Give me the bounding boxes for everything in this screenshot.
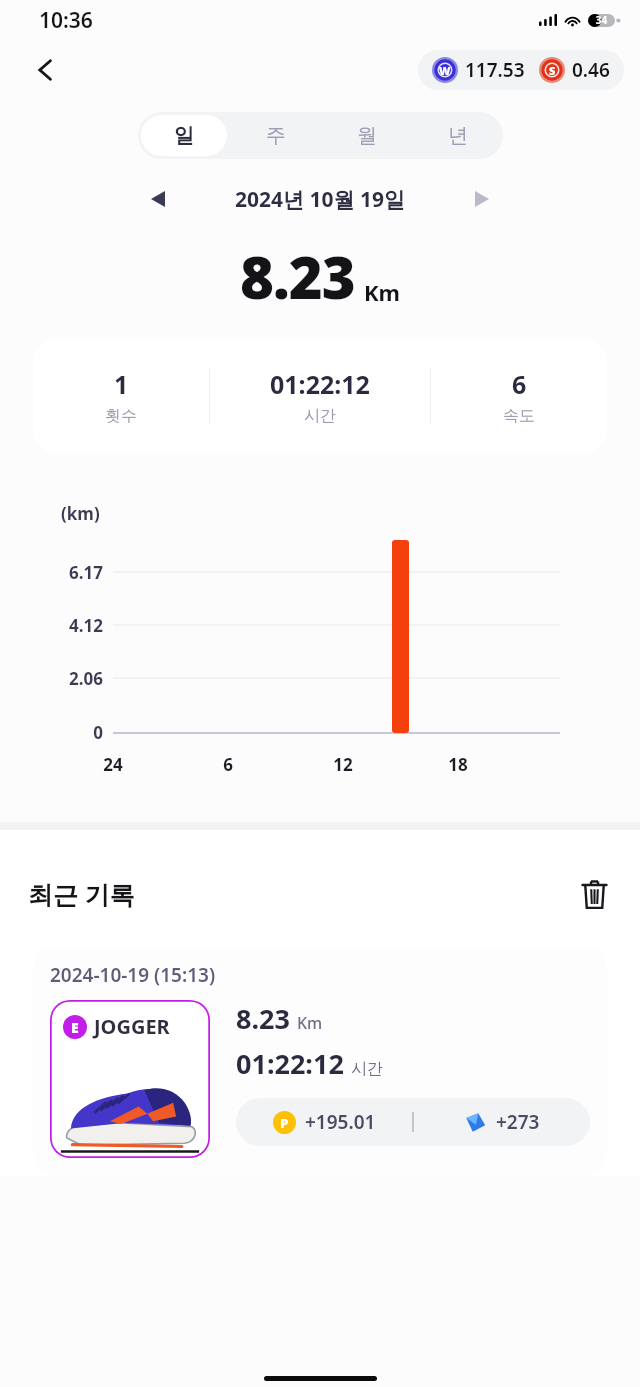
button[interactable]: E [50,1000,210,1158]
button[interactable]: 년 [415,115,500,156]
staticText: 6 [198,753,258,776]
staticText: 0.46 [572,57,610,83]
staticText: 01:22:12 [270,367,370,401]
staticText: 2.06 [0,667,103,690]
button[interactable]: 일 [141,115,227,156]
staticText: 117.53 [465,57,525,83]
staticText: 34 [588,13,615,27]
staticText: 18 [428,753,488,776]
staticText: 0 [0,721,103,744]
button[interactable]: 1 [33,339,209,453]
staticText: 시간 [351,1059,383,1079]
staticText: P [280,1114,289,1132]
staticText: 10:36 [39,6,93,35]
staticText: 4.12 [0,614,103,637]
staticText: (km) [61,502,100,525]
staticText: 8.23 [236,1000,290,1037]
staticText: 1 [114,367,129,401]
staticText: JOGGER [94,1013,170,1040]
staticText: W [439,63,451,78]
staticText: 24 [83,753,143,776]
button[interactable]: Next day [464,181,500,217]
button[interactable]: P [236,1098,590,1146]
staticText: 시간 [304,406,336,426]
staticText: 일 [174,123,194,148]
staticText: 2024-10-19 (15:13) [50,962,216,988]
staticText: 01:22:12 [236,1045,344,1082]
button[interactable]: 월 [324,115,409,156]
button[interactable]: 01:22:12 [210,339,430,453]
staticText: Km [364,277,401,307]
button[interactable]: 6 [431,339,607,453]
staticText: 월 [357,123,377,148]
button[interactable]: W [418,50,624,90]
staticText: 6.17 [0,561,103,584]
staticText: 8.23 [240,237,355,316]
button[interactable]: 2024-10-19 (15:13) [33,946,607,1176]
staticText: 최근 기록 [28,877,135,911]
staticText: 속도 [503,406,535,426]
staticText: 횟수 [105,406,137,426]
staticText: Km [297,1012,323,1034]
staticText: S [549,63,556,78]
button[interactable]: 주 [233,115,318,156]
staticText: 6 [512,367,527,401]
staticText: +273 [496,1109,540,1135]
staticText: E [71,1018,79,1037]
staticText: 주 [266,123,286,148]
staticText: +195.01 [305,1109,376,1135]
button[interactable]: Previous day [140,181,176,217]
staticText: 년 [448,123,468,148]
staticText: 12 [313,753,373,776]
button[interactable]: Back [24,48,68,92]
staticText: 2024년 10월 19일 [235,185,406,214]
button[interactable]: Delete records [572,872,616,916]
